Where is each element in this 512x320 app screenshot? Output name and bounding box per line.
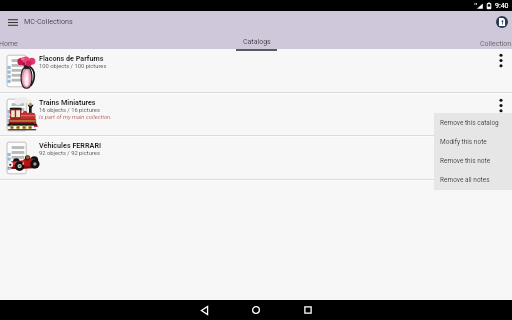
staticText: 92 objects / 92 pictures [39, 150, 100, 157]
staticText: Collection [480, 40, 512, 48]
staticText: Remove this note [440, 157, 491, 165]
button[interactable]: Remove all notes [434, 170, 512, 189]
staticText: Is part of my main collection. [39, 114, 112, 121]
button[interactable]: Collection [480, 37, 512, 50]
button[interactable]: Modify this note [434, 132, 512, 151]
staticText: Remove this catalog [440, 119, 499, 127]
staticText: Modify this note [440, 138, 487, 146]
button[interactable]: Recent apps [291, 300, 325, 320]
button[interactable]: Flacons de Parfums [0, 49, 512, 92]
staticText: Catalogs [243, 38, 271, 46]
button[interactable]: Back [187, 300, 221, 320]
button[interactable]: Catalogs [226, 38, 286, 51]
button[interactable]: Véhicules FERRARI [0, 137, 512, 179]
staticText: Remove all notes [440, 176, 490, 184]
button[interactable]: Trains Miniatures [0, 94, 512, 135]
button[interactable]: More options [484, 137, 512, 179]
staticText: Home [0, 40, 18, 48]
staticText: Véhicules FERRARI [39, 141, 102, 149]
button[interactable]: Home [0, 37, 60, 50]
button[interactable]: Account [496, 16, 508, 28]
staticText: Flacons de Parfums [39, 54, 104, 62]
staticText: 9:40 [495, 2, 509, 10]
staticText: MC-Collections [24, 17, 73, 25]
button[interactable]: Navigation menu [5, 14, 21, 30]
button[interactable]: More options [484, 94, 512, 135]
staticText: Trains Miniatures [39, 98, 96, 106]
button[interactable]: Remove this note [434, 151, 512, 170]
staticText: 100 objects / 100 pictures [39, 63, 107, 70]
button[interactable]: Remove this catalog [434, 113, 512, 132]
button[interactable]: Home [239, 300, 273, 320]
staticText: 16 objects / 16 pictures [39, 107, 100, 114]
button[interactable]: More options [484, 49, 512, 92]
